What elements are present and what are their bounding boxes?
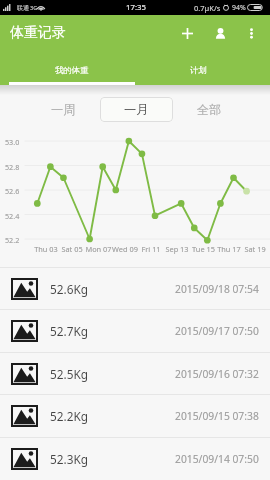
staticText: 全部 <box>197 102 222 117</box>
staticText: 2015/09/16 07:32 <box>175 367 259 381</box>
staticText: 一月 <box>124 102 149 117</box>
staticText: 52.8 <box>5 162 20 172</box>
staticText: Wed 09 <box>112 244 138 254</box>
staticText: Tue 15 <box>192 244 215 254</box>
staticText: 52.7Kg <box>50 323 88 339</box>
staticText: 53.0 <box>5 137 20 147</box>
staticText: 52.2 <box>5 235 20 245</box>
button[interactable]: 52.6Kg <box>0 268 270 309</box>
staticText: 2015/09/17 07:50 <box>175 324 259 338</box>
staticText: 52.2Kg <box>50 408 88 424</box>
button[interactable]: 我的体重 <box>9 55 135 84</box>
button[interactable]: More options <box>235 17 267 49</box>
staticText: 52.3Kg <box>50 451 88 467</box>
staticText: 17:35 <box>126 2 146 13</box>
staticText: Sep 13 <box>165 244 189 254</box>
button[interactable]: 52.5Kg <box>0 353 270 394</box>
staticText: 联通 <box>17 4 30 12</box>
staticText: 52.4 <box>5 211 20 221</box>
staticText: 94% <box>232 3 246 12</box>
staticText: 52.6 <box>5 186 20 196</box>
staticText: 52.5Kg <box>50 366 88 382</box>
staticText: Fri 11 <box>141 244 161 254</box>
button[interactable]: 计划 <box>135 55 261 84</box>
staticText: 2015/09/18 07:54 <box>175 282 259 296</box>
staticText: 0.7µK/s <box>194 3 221 13</box>
button[interactable]: Add <box>171 17 203 49</box>
button[interactable]: 一周 <box>26 97 100 122</box>
staticText: Thu 17 <box>217 244 241 254</box>
button[interactable]: 52.3Kg <box>0 438 270 479</box>
staticText: Mon 07 <box>85 244 112 254</box>
button[interactable]: 52.7Kg <box>0 310 270 351</box>
staticText: 一周 <box>51 102 76 117</box>
button[interactable]: Account <box>204 17 236 49</box>
staticText: 体重记录 <box>10 24 66 42</box>
staticText: 计划 <box>190 65 207 75</box>
staticText: Sat 19 <box>244 244 266 254</box>
staticText: 2015/09/14 07:50 <box>175 452 259 466</box>
button[interactable]: 一月 <box>100 97 173 122</box>
button[interactable]: 52.2Kg <box>0 395 270 436</box>
staticText: 3G <box>30 4 38 12</box>
staticText: 2015/09/15 07:38 <box>175 409 259 423</box>
staticText: Sat 05 <box>61 244 83 254</box>
staticText: 我的体重 <box>55 65 89 75</box>
button[interactable]: 全部 <box>173 97 246 122</box>
staticText: Thu 03 <box>34 244 58 254</box>
staticText: 52.6Kg <box>50 281 88 297</box>
